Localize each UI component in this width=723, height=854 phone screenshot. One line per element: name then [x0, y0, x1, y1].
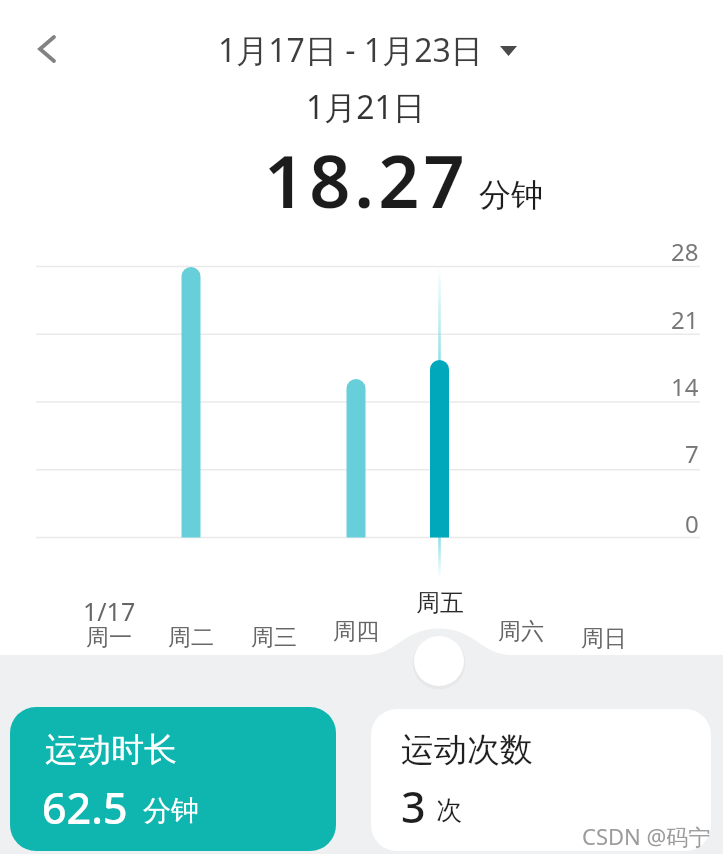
staticText: 分钟 [479, 175, 543, 215]
staticText: 1月17日 - 1月23日 [218, 28, 483, 72]
staticText: 次 [436, 794, 462, 827]
staticText: 周六 [498, 617, 544, 646]
staticText: 1/17 [83, 594, 136, 628]
staticText: 18.27 [264, 131, 469, 229]
staticText: 7 [685, 437, 699, 470]
staticText: 周三 [251, 623, 297, 652]
staticText: 周日 [581, 624, 627, 653]
staticText: 3 [401, 777, 426, 836]
staticText: CSDN @码宁 [582, 821, 711, 851]
staticText: 28 [671, 235, 699, 268]
staticText: 周四 [333, 617, 379, 646]
staticText: 运动次数 [401, 729, 533, 771]
staticText: 0 [685, 507, 699, 540]
staticText: 周二 [168, 623, 214, 652]
staticText: 14 [671, 370, 699, 403]
staticText: 分钟 [143, 793, 199, 828]
staticText: 周五 [416, 588, 464, 618]
staticText: 21 [671, 303, 699, 336]
staticText: 62.5 [42, 778, 128, 837]
staticText: 运动时长 [45, 729, 177, 771]
staticText: 周一 [86, 623, 132, 652]
staticText: 1月21日 [306, 85, 425, 129]
